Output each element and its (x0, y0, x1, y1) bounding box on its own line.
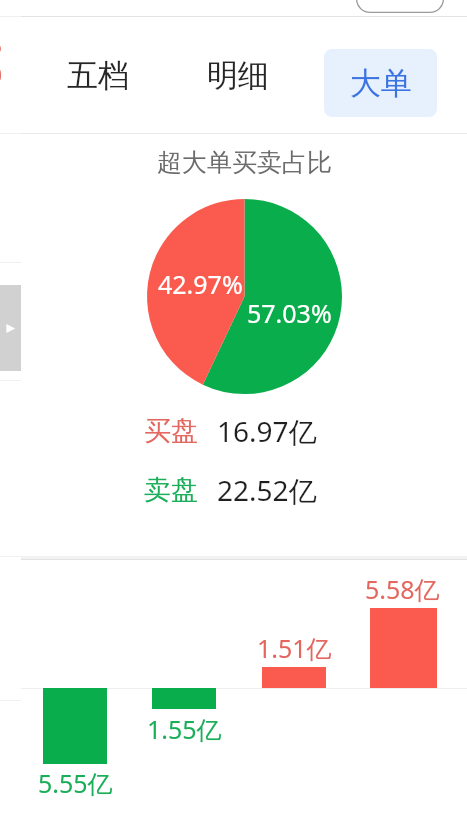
staticText: 16.97亿 (217, 412, 317, 450)
staticText: 1.55亿 (147, 712, 222, 746)
button[interactable]: 大单 (324, 49, 437, 117)
staticText: 5.55亿 (38, 766, 113, 800)
staticText: 明细 (207, 56, 269, 95)
staticText: 大单 (350, 64, 412, 103)
staticText: 超大单买卖占比 (157, 147, 332, 178)
staticText: 50 (0, 32, 11, 90)
button[interactable]: 五档 (51, 38, 145, 112)
staticText: 57.03% (247, 296, 332, 330)
staticText: 42.97% (158, 267, 243, 301)
staticText: 5.58亿 (365, 572, 440, 606)
button[interactable]: 买盘 (21, 402, 467, 461)
staticText: 五档 (67, 56, 129, 95)
staticText: 买盘 (144, 414, 198, 448)
button[interactable]: 明细 (191, 38, 285, 112)
staticText: 1.51亿 (257, 631, 332, 665)
button[interactable]: More options (356, 0, 444, 13)
staticText: 22.52亿 (217, 471, 317, 509)
button[interactable]: Expand panel (0, 285, 21, 371)
button[interactable]: 卖盘 (21, 461, 467, 520)
staticText: 卖盘 (144, 473, 198, 507)
